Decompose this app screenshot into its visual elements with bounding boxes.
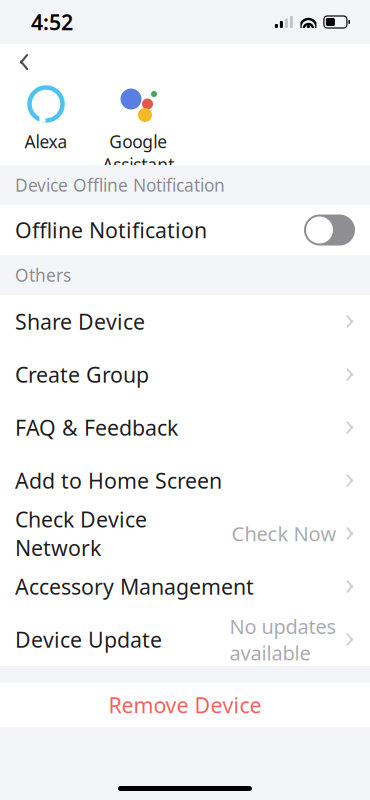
staticText: 4:52 xyxy=(31,8,73,36)
staticText: Check Device Network xyxy=(15,505,147,562)
staticText: Create Group xyxy=(15,360,149,389)
staticText: Remove Device xyxy=(108,691,261,719)
staticText: Add to Home Screen xyxy=(15,466,222,495)
staticText: Device Update xyxy=(15,625,162,654)
button[interactable]: Google Assistant xyxy=(92,84,184,176)
staticText: Device Offline Notification xyxy=(15,173,225,196)
staticText: Share Device xyxy=(15,307,145,336)
button[interactable]: Add to Home Screen xyxy=(0,454,370,507)
button[interactable]: Share Device xyxy=(0,295,370,348)
staticText: Google Assistant xyxy=(102,130,174,176)
button[interactable]: Offline Notification toggle xyxy=(304,214,355,245)
button[interactable]: Check Device Network xyxy=(0,507,370,560)
staticText: Accessory Management xyxy=(15,572,254,601)
staticText: Alexa xyxy=(24,130,67,153)
button[interactable]: Create Group xyxy=(0,348,370,401)
button[interactable]: Device Update xyxy=(0,613,370,666)
button[interactable]: Remove Device xyxy=(0,683,370,727)
button[interactable]: FAQ & Feedback xyxy=(0,401,370,454)
button[interactable]: Back xyxy=(2,44,46,80)
button[interactable]: Alexa xyxy=(0,84,92,153)
staticText: Offline Notification xyxy=(15,216,207,244)
staticText: Others xyxy=(15,263,71,286)
button[interactable]: Accessory Management xyxy=(0,560,370,613)
staticText: Check Now xyxy=(231,520,336,547)
staticText: No updates available xyxy=(229,613,336,666)
staticText: FAQ & Feedback xyxy=(15,413,178,442)
